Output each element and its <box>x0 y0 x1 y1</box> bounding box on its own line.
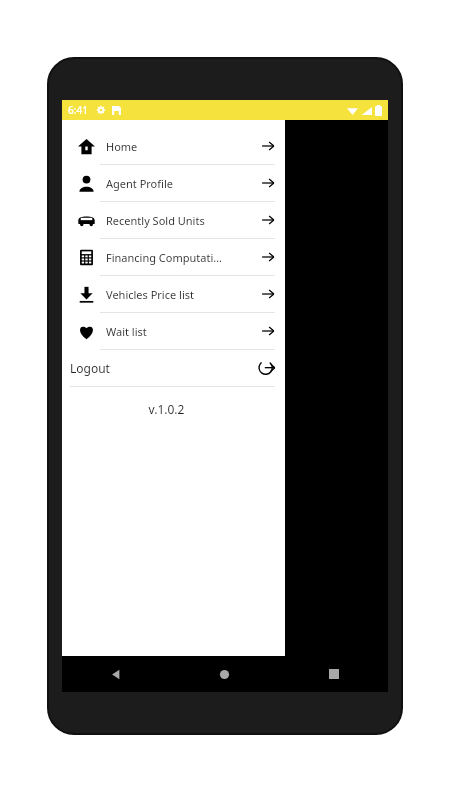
staticText: 6:41 <box>68 103 88 117</box>
button[interactable]: Home <box>170 656 279 692</box>
staticText: Vehicles Price list <box>106 287 261 302</box>
button[interactable]: Agent Profile <box>62 165 285 201</box>
button[interactable]: Financing Computati… <box>62 239 285 275</box>
staticText: Home <box>106 139 261 154</box>
staticText: Financing Computati… <box>106 250 261 265</box>
button[interactable]: Back <box>62 656 170 692</box>
button[interactable]: Vehicles Price list <box>62 276 285 312</box>
button[interactable]: Home <box>62 128 285 164</box>
button[interactable]: Recent apps <box>279 656 388 692</box>
staticText: Agent Profile <box>106 176 261 191</box>
button[interactable]: Recently Sold Units <box>62 202 285 238</box>
staticText: Recently Sold Units <box>106 213 261 228</box>
button[interactable]: Logout <box>62 350 285 386</box>
staticText: Logout <box>70 360 258 376</box>
staticText: Wait list <box>106 324 261 339</box>
staticText: v.1.0.2 <box>62 401 271 417</box>
button[interactable]: Wait list <box>62 313 285 349</box>
